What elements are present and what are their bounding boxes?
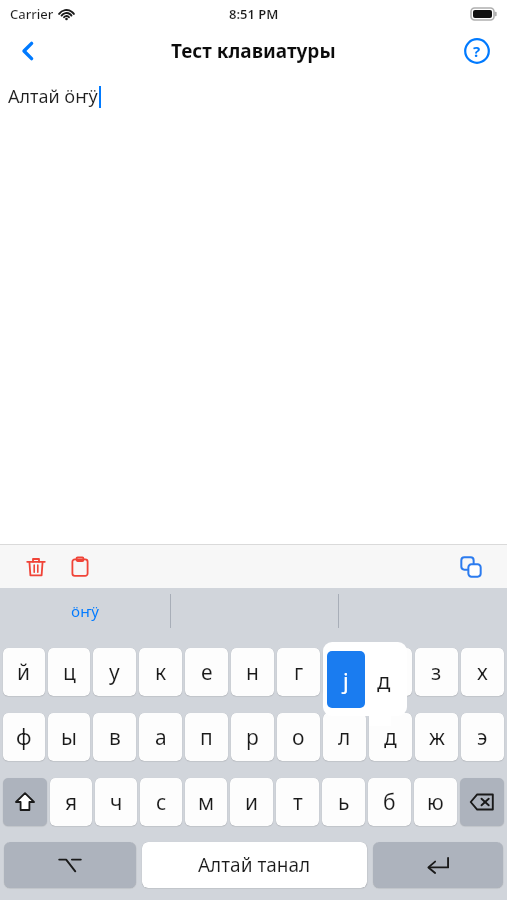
button[interactable]: э — [461, 713, 504, 761]
button[interactable]: к — [139, 648, 182, 696]
staticText: н — [246, 658, 259, 687]
button[interactable]: д — [369, 648, 412, 696]
staticText: о — [292, 723, 305, 752]
button[interactable]: й — [3, 648, 45, 696]
staticText: с — [156, 788, 167, 817]
button[interactable]: Return — [373, 842, 503, 888]
staticText: р — [246, 723, 259, 752]
staticText: j — [343, 665, 349, 695]
button[interactable]: в — [93, 713, 136, 761]
staticText: т — [293, 788, 303, 817]
staticText: Carrier — [10, 5, 54, 23]
staticText: у — [109, 658, 120, 687]
button[interactable]: б — [368, 778, 411, 826]
staticText: и — [245, 788, 259, 817]
staticText: Алтай танал — [198, 852, 311, 878]
button[interactable]: т — [276, 778, 319, 826]
staticText: х — [477, 658, 488, 687]
button[interactable]: Paste — [60, 547, 100, 587]
button[interactable]: д — [369, 713, 412, 761]
button[interactable]: п — [185, 713, 228, 761]
button[interactable]: л — [323, 713, 366, 761]
staticText: ю — [427, 788, 444, 817]
button[interactable]: Delete — [16, 547, 56, 587]
button[interactable]: м — [185, 778, 227, 826]
staticText: к — [155, 658, 167, 687]
staticText: з — [431, 658, 442, 687]
staticText: г — [294, 658, 304, 687]
button[interactable]: г — [277, 648, 320, 696]
button[interactable]: j — [323, 648, 366, 696]
button[interactable]: р — [231, 713, 274, 761]
staticText: ? — [473, 41, 481, 61]
staticText: ч — [110, 788, 123, 817]
button[interactable]: з — [415, 648, 458, 696]
button[interactable]: я — [50, 778, 92, 826]
staticText: м — [198, 788, 215, 817]
staticText: а — [155, 723, 167, 752]
staticText: j — [342, 658, 348, 687]
button[interactable]: j — [327, 651, 365, 708]
staticText: д — [377, 665, 391, 695]
button[interactable]: ь — [322, 778, 365, 826]
staticText: й — [17, 658, 31, 687]
staticText: в — [109, 723, 121, 752]
staticText: Алтай öҥÿ — [8, 84, 98, 109]
button[interactable]: Алтай танал — [142, 842, 367, 888]
staticText: 8:51 PM — [229, 5, 279, 23]
staticText: э — [477, 723, 488, 752]
staticText: д — [384, 658, 397, 687]
staticText: Тест клавиатуры — [171, 38, 336, 64]
staticText: п — [200, 723, 213, 752]
button[interactable]: ф — [3, 713, 45, 761]
button[interactable]: ч — [95, 778, 137, 826]
button[interactable]: х — [461, 648, 504, 696]
button[interactable]: Copy — [451, 547, 491, 587]
staticText: я — [65, 788, 78, 817]
button[interactable]: Backspace — [460, 778, 504, 826]
button[interactable]: öҥÿ — [0, 593, 170, 629]
staticText: е — [201, 658, 213, 687]
button[interactable]: ц — [48, 648, 90, 696]
button[interactable]: ю — [414, 778, 457, 826]
button[interactable]: у — [93, 648, 136, 696]
staticText: ф — [16, 723, 32, 752]
button[interactable]: о — [277, 713, 320, 761]
button[interactable]: с — [140, 778, 182, 826]
button[interactable]: и — [230, 778, 273, 826]
button[interactable]: Back — [6, 29, 50, 73]
staticText: ы — [61, 723, 77, 752]
button[interactable]: н — [231, 648, 274, 696]
staticText: ь — [338, 788, 350, 817]
button[interactable]: Switch keyboard — [4, 842, 136, 888]
staticText: л — [338, 723, 351, 752]
button[interactable]: д — [365, 651, 403, 708]
staticText: ц — [63, 658, 76, 687]
staticText: ж — [429, 723, 445, 752]
button[interactable]: е — [185, 648, 228, 696]
staticText: б — [383, 788, 396, 817]
button[interactable]: Shift — [3, 778, 47, 826]
button[interactable]: ы — [48, 713, 90, 761]
staticText: д — [384, 723, 397, 752]
button[interactable]: ж — [415, 713, 458, 761]
button[interactable]: Help — [455, 29, 499, 73]
button[interactable]: а — [139, 713, 182, 761]
